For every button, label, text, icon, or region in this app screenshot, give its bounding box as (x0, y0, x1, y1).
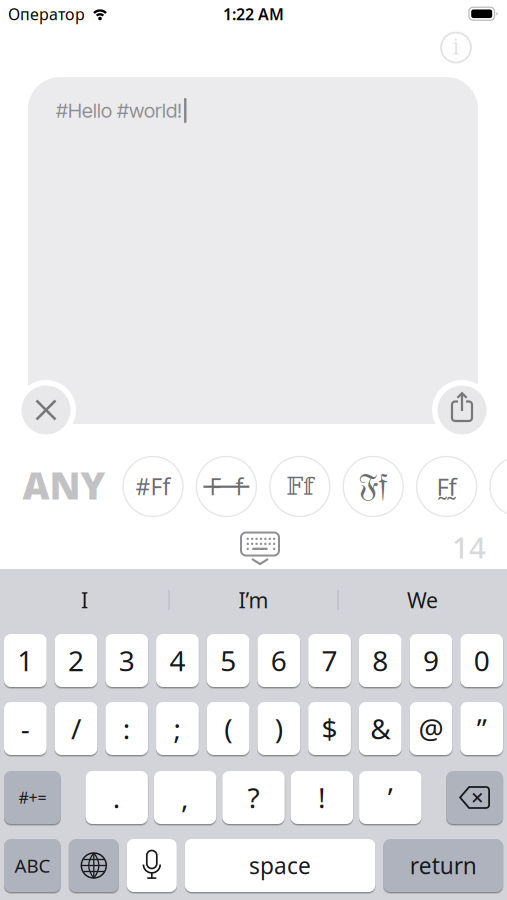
staticText: - (21, 710, 30, 747)
staticText: . (113, 779, 121, 816)
button[interactable]: 1 (2, 632, 49, 689)
staticText: 6 (271, 642, 287, 679)
button[interactable]: ABC (2, 837, 63, 894)
button[interactable]: Next keyboard (67, 837, 121, 894)
staticText: ’ (388, 779, 393, 816)
staticText: I’m (238, 586, 268, 614)
staticText: F̰f̰ (437, 471, 457, 502)
button[interactable]: Font style 3 (269, 455, 331, 517)
staticText: 7 (322, 642, 338, 679)
button[interactable]: Font style 5 (416, 455, 478, 517)
button[interactable]: Share (432, 380, 492, 440)
staticText: 14 (452, 527, 486, 566)
staticText: f (235, 471, 243, 501)
button[interactable]: Font style 4 (342, 455, 404, 517)
button[interactable]: @ (408, 700, 454, 757)
staticText: 𝔽𝕗 (286, 472, 313, 500)
staticText: 3 (119, 642, 135, 679)
staticText: 𝔉𝔣 (358, 470, 388, 502)
staticText: We (407, 586, 438, 614)
staticText: ANY (22, 460, 105, 510)
button[interactable]: 0 (458, 632, 505, 689)
staticText: 5 (220, 642, 236, 679)
button[interactable]: 9 (408, 632, 454, 689)
button[interactable]: Dictate (125, 837, 179, 894)
button[interactable]: We (342, 575, 502, 625)
staticText: 1 (17, 642, 33, 679)
button[interactable]: ( (205, 700, 251, 757)
staticText: #+= (18, 787, 46, 808)
button[interactable]: Dismiss keyboard (238, 529, 282, 565)
button[interactable]: I (4, 575, 164, 625)
button[interactable]: Delete (444, 769, 505, 826)
button[interactable]: ! (289, 769, 355, 826)
staticText: 8 (372, 642, 388, 679)
staticText: I (81, 586, 88, 614)
button[interactable]: - (2, 700, 49, 757)
button[interactable]: ; (154, 700, 201, 757)
staticText: ? (247, 779, 259, 816)
staticText: i (452, 35, 459, 59)
button[interactable]: 6 (255, 632, 302, 689)
button[interactable]: space (183, 837, 377, 894)
staticText: @ (418, 710, 443, 747)
staticText: 9 (423, 642, 439, 679)
button[interactable]: 7 (306, 632, 353, 689)
staticText: 2 (68, 642, 84, 679)
button[interactable]: 4 (154, 632, 201, 689)
staticText: ! (318, 779, 326, 816)
button[interactable]: Info (439, 30, 473, 64)
button[interactable]: ” (458, 700, 505, 757)
button[interactable]: #+= (2, 769, 63, 826)
staticText: #Hello #world! (56, 98, 182, 123)
staticText: F (209, 471, 221, 501)
staticText: 4 (169, 642, 185, 679)
staticText: Оператор (8, 3, 85, 25)
button[interactable]: 8 (357, 632, 404, 689)
button[interactable]: $ (306, 700, 353, 757)
staticText: ” (477, 710, 487, 747)
button[interactable]: 5 (205, 632, 251, 689)
button[interactable]: Clear text (16, 380, 76, 440)
button[interactable]: Font style 6 (489, 455, 507, 517)
button[interactable]: 2 (53, 632, 99, 689)
staticText: space (249, 850, 311, 880)
staticText: ; (173, 710, 181, 747)
button[interactable]: ? (220, 769, 287, 826)
button[interactable]: return (381, 837, 505, 894)
button[interactable]: 3 (103, 632, 150, 689)
staticText: , (181, 779, 189, 816)
button[interactable]: . (83, 769, 150, 826)
staticText: & (370, 710, 390, 747)
staticText: / (71, 710, 81, 747)
staticText: ABC (14, 853, 50, 878)
button[interactable]: : (103, 700, 150, 757)
staticText: ( (224, 710, 232, 747)
staticText: 0 (474, 642, 490, 679)
button[interactable]: , (152, 769, 218, 826)
button[interactable]: ) (255, 700, 302, 757)
button[interactable]: ’ (357, 769, 423, 826)
staticText: $ (322, 710, 338, 747)
button[interactable]: & (357, 700, 404, 757)
button[interactable]: Font style 2 (195, 455, 257, 517)
staticText: 1:22 AM (223, 3, 284, 25)
button[interactable]: / (53, 700, 99, 757)
staticText: #Ff (135, 471, 170, 501)
staticText: : (123, 710, 131, 747)
staticText: return (410, 850, 477, 880)
button[interactable]: Font style 1 (122, 455, 184, 517)
button[interactable]: I’m (173, 575, 333, 625)
staticText: ) (275, 710, 283, 747)
